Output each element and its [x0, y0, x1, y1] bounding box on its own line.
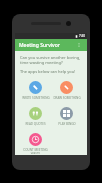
button[interactable]: PLAY BINGO: [51, 106, 82, 127]
staticText: Meeting Survivor: [19, 42, 60, 49]
button[interactable]: COUNT MEETING WASTE: [20, 132, 51, 155]
staticText: COUNT MEETING WASTE: [23, 148, 48, 154]
staticText: The apps below can help you!: [20, 69, 76, 74]
button[interactable]: More options: [75, 41, 83, 49]
button[interactable]: READ QUOTES: [20, 106, 51, 127]
staticText: PLAY BINGO: [58, 122, 76, 126]
button[interactable]: DRAW SOMETHING: [51, 80, 82, 101]
staticText: Can you survive another boring, time was…: [20, 55, 82, 65]
staticText: 7:30: [79, 34, 85, 38]
staticText: READ QUOTES: [25, 122, 46, 126]
staticText: WRITE SOMETHING: [22, 96, 50, 100]
button[interactable]: WRITE SOMETHING: [20, 80, 51, 101]
staticText: DRAW SOMETHING: [53, 96, 81, 100]
